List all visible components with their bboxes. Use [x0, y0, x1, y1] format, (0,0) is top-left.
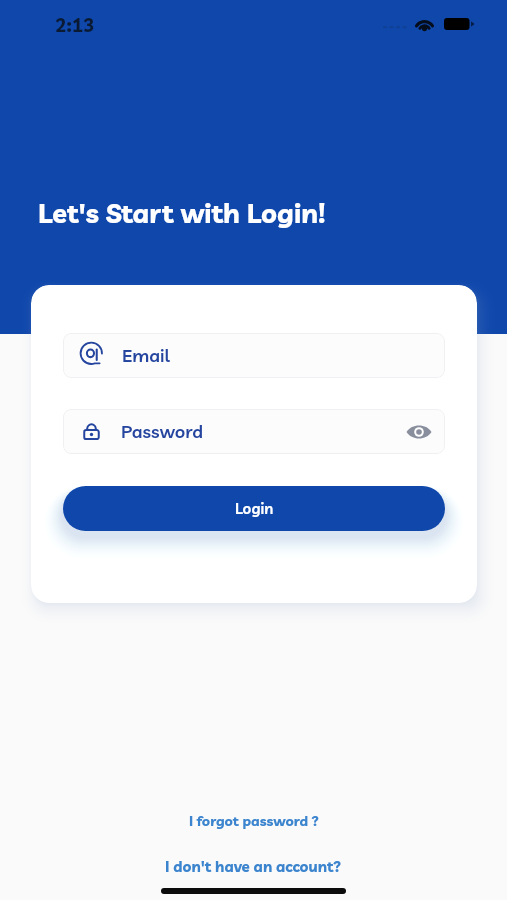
button[interactable]: Login	[63, 486, 445, 531]
staticText: Email	[122, 344, 170, 367]
button[interactable]: I don't have an account?	[149, 850, 358, 883]
staticText: Login	[235, 499, 274, 518]
button[interactable]: Password	[63, 409, 445, 454]
staticText: Password	[121, 420, 204, 443]
staticText: 2:13	[55, 13, 95, 37]
button[interactable]: Email	[63, 333, 445, 378]
button[interactable]: I forgot password ?	[173, 805, 335, 837]
staticText: Let's Start with Login!	[38, 196, 326, 230]
button[interactable]: Show password	[406, 424, 432, 440]
